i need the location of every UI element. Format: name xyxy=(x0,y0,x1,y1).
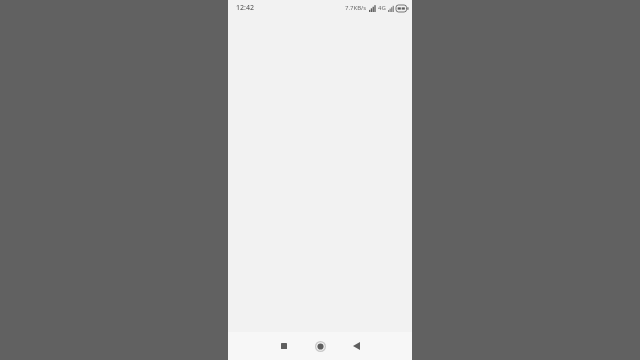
button[interactable]: Back xyxy=(339,332,373,360)
staticText: 7.7KB/s xyxy=(345,4,367,12)
button[interactable]: Recents xyxy=(267,332,301,360)
staticText: 12:42 xyxy=(236,3,254,13)
staticText: 4G xyxy=(378,4,386,12)
button[interactable]: Home xyxy=(303,332,337,360)
